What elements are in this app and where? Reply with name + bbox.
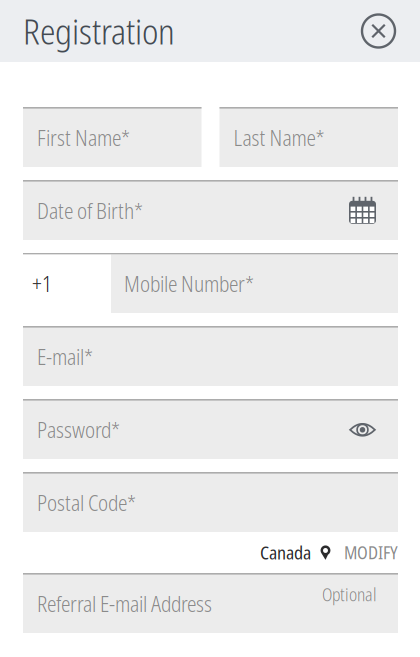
- button[interactable]: +1: [23, 253, 398, 313]
- button[interactable]: Last Name*: [219, 107, 398, 167]
- button[interactable]: Canada: [260, 540, 333, 565]
- button[interactable]: MODIFY: [333, 541, 398, 564]
- staticText: Date of Birth*: [37, 196, 143, 225]
- staticText: E-mail*: [37, 342, 93, 371]
- staticText: Canada: [260, 540, 311, 565]
- button[interactable]: E-mail*: [23, 326, 398, 386]
- staticText: MODIFY: [344, 541, 398, 564]
- staticText: Mobile Number*: [124, 269, 254, 298]
- button[interactable]: First Name*: [23, 107, 201, 167]
- staticText: First Name*: [37, 123, 130, 152]
- staticText: Last Name*: [233, 123, 324, 152]
- staticText: +1: [32, 269, 52, 298]
- button[interactable]: Referral E-mail Address: [23, 573, 398, 633]
- staticText: Password*: [37, 415, 120, 444]
- staticText: Postal Code*: [37, 488, 136, 517]
- button[interactable]: Password*: [23, 399, 398, 459]
- staticText: Registration: [23, 7, 175, 55]
- button[interactable]: Date of Birth*: [23, 180, 398, 240]
- button[interactable]: Postal Code*: [23, 472, 398, 532]
- button[interactable]: Close: [350, 6, 395, 55]
- staticText: Optional: [322, 583, 377, 606]
- staticText: Referral E-mail Address: [37, 589, 212, 618]
